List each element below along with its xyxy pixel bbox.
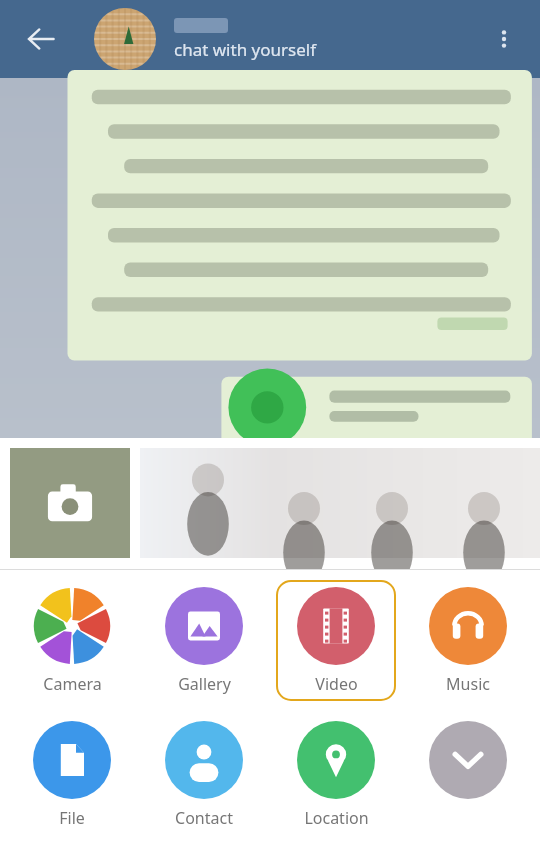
button[interactable]: Music bbox=[408, 580, 528, 701]
button[interactable]: Video bbox=[276, 580, 396, 701]
button[interactable]: Location bbox=[276, 714, 396, 835]
button[interactable]: Gallery bbox=[144, 580, 264, 701]
button[interactable]: Contact bbox=[144, 714, 264, 835]
button[interactable]: Back bbox=[12, 10, 70, 68]
staticText: chat with yourself bbox=[174, 38, 317, 61]
staticText: Gallery bbox=[178, 673, 231, 695]
staticText: Location bbox=[304, 807, 369, 829]
button[interactable]: Recent photo bbox=[140, 448, 540, 558]
button[interactable]: Camera bbox=[12, 580, 132, 701]
button[interactable]: Show more options bbox=[408, 714, 528, 832]
button[interactable]: Profile photo bbox=[94, 8, 156, 70]
staticText: Video bbox=[315, 673, 358, 695]
staticText: Music bbox=[446, 673, 490, 695]
staticText: Contact bbox=[175, 807, 233, 829]
button[interactable]: More options bbox=[478, 13, 530, 65]
button[interactable]: Open camera bbox=[10, 448, 130, 558]
button[interactable]: File bbox=[12, 714, 132, 835]
staticText: File bbox=[59, 807, 85, 829]
staticText: Camera bbox=[43, 673, 102, 695]
